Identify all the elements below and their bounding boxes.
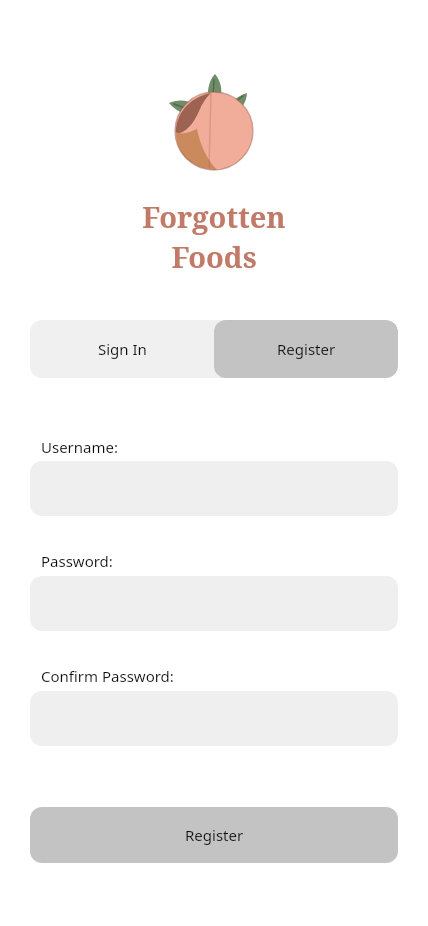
staticText: Forgotten xyxy=(142,197,286,236)
staticText: Username: xyxy=(41,437,118,457)
staticText: Foods xyxy=(171,237,257,276)
staticText: Register xyxy=(185,825,244,845)
staticText: Password: xyxy=(41,551,113,571)
staticText: Sign In xyxy=(98,339,147,359)
staticText: Register xyxy=(277,339,336,359)
button[interactable]: Register xyxy=(30,807,398,863)
staticText: Confirm Password: xyxy=(41,666,174,686)
button[interactable]: Sign In xyxy=(30,320,214,378)
other: Forgotten Foods logo xyxy=(148,70,280,202)
button[interactable]: Register xyxy=(214,320,398,378)
